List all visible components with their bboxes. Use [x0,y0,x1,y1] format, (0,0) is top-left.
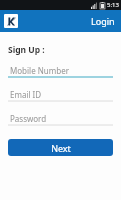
staticText: Email ID [10,89,42,100]
staticText: 5:13 [107,1,119,9]
button[interactable]: App logo [4,14,18,28]
button[interactable]: Password [8,113,113,127]
button[interactable]: Login [85,11,121,31]
staticText: Login [91,15,115,27]
button[interactable]: Email ID [8,89,113,103]
staticText: Next [51,142,71,154]
button[interactable]: Mobile Number [8,65,113,79]
staticText: Sign Up : [8,44,45,56]
staticText: Password [10,113,47,124]
staticText: Mobile Number [10,65,69,76]
button[interactable]: Next [8,139,113,156]
